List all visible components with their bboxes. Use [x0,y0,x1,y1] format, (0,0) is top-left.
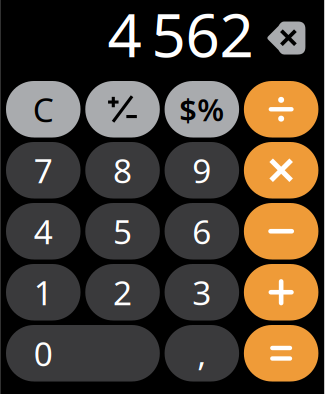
button[interactable]: Plus Minus [85,81,160,137]
button[interactable]: 6 [165,203,239,259]
button[interactable]: 9 [165,142,239,198]
staticText: 6 [192,209,211,253]
button[interactable]: Minus [244,203,318,259]
button[interactable]: Divide [244,81,318,137]
button[interactable]: 8 [85,142,160,198]
button[interactable]: 2 [85,264,160,320]
button[interactable]: Delete [266,21,305,54]
button[interactable]: 1 [6,264,80,320]
button[interactable]: 0 [6,325,160,381]
staticText: 7 [34,148,53,192]
button[interactable]: Multiply [244,142,318,198]
button[interactable]: 3 [165,264,239,320]
staticText: 2 [113,270,132,314]
button[interactable]: , [165,325,239,381]
staticText: $% [179,89,224,130]
button[interactable]: Plus [244,264,318,320]
staticText: C [33,87,54,131]
staticText: 9 [192,148,211,192]
button[interactable]: $% [165,81,239,137]
staticText: 8 [113,148,132,192]
staticText: 3 [192,270,211,314]
button[interactable]: 7 [6,142,80,198]
staticText: 1 [34,270,53,314]
button[interactable]: 5 [85,203,160,259]
staticText: , [197,331,206,375]
button[interactable]: Equals [244,325,318,381]
button[interactable]: C [6,81,80,137]
button[interactable]: 4 [6,203,80,259]
staticText: 0 [34,331,53,375]
staticText: 4 [34,209,53,253]
staticText: 5 [113,209,132,253]
staticText: 4 562 [107,0,253,74]
